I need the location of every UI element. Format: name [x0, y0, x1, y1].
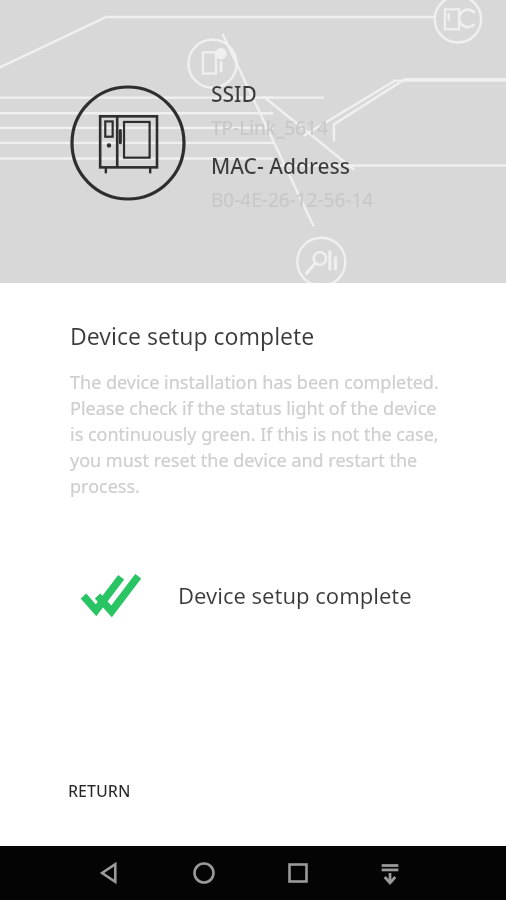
staticText: B0-4E-26-12-56-14	[211, 187, 374, 213]
button[interactable]: Recent apps	[272, 847, 324, 899]
button[interactable]: Back	[84, 847, 136, 899]
staticText: Device setup complete	[70, 320, 315, 351]
staticText: SSID	[211, 80, 257, 109]
staticText: MAC- Address	[211, 152, 350, 181]
staticText: Device setup complete	[178, 580, 412, 610]
staticText: RETURN	[68, 780, 131, 802]
button[interactable]: Notifications	[364, 847, 416, 899]
staticText: The device installation has been complet…	[70, 370, 454, 499]
button[interactable]: RETURN	[0, 766, 161, 816]
staticText: TP-Link_5614	[211, 115, 328, 141]
button[interactable]: Home	[178, 847, 230, 899]
